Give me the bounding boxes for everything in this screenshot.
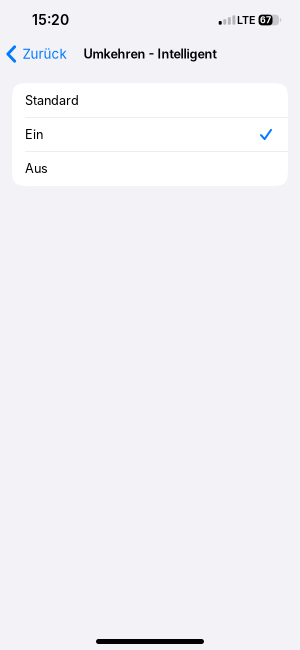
staticText: LTE — [237, 13, 255, 26]
staticText: Umkehren - Intelligent — [83, 46, 216, 62]
staticText: Standard — [25, 93, 79, 108]
staticText: 15:20 — [32, 11, 69, 28]
staticText: 67 — [260, 15, 271, 25]
button[interactable]: Zurück — [0, 40, 74, 68]
staticText: Aus — [25, 161, 48, 176]
button[interactable]: Aus — [12, 151, 288, 185]
staticText: Zurück — [22, 46, 66, 62]
button[interactable]: Standard — [12, 83, 288, 117]
staticText: Ein — [25, 127, 43, 142]
button[interactable]: Ein — [12, 117, 288, 151]
